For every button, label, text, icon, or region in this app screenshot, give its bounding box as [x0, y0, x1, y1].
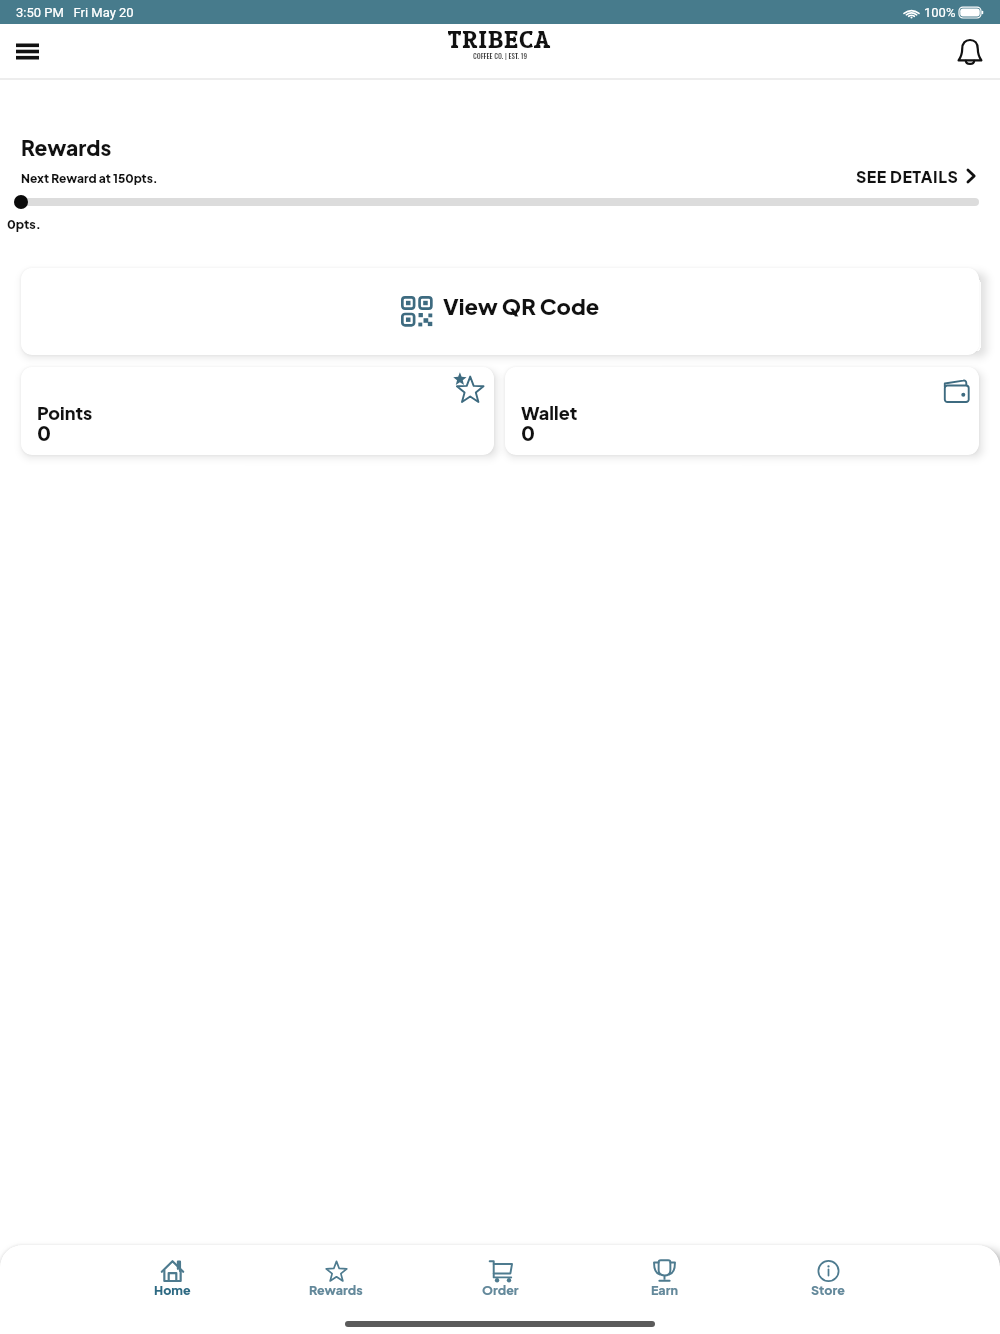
staticText: Home [154, 1282, 191, 1298]
staticText: Wallet [521, 401, 578, 424]
staticText: View QR Code [443, 292, 600, 320]
staticText: Earn [651, 1282, 678, 1298]
button[interactable]: View QR Code [21, 268, 979, 355]
staticText: 0 [37, 420, 51, 445]
staticText: SEE DETAILS [856, 166, 959, 186]
button[interactable]: Rewards [254, 1245, 418, 1304]
staticText: 0pts. [7, 216, 41, 232]
staticText: 100% [924, 5, 956, 20]
button[interactable]: Earn [582, 1245, 746, 1304]
staticText: Points [37, 401, 93, 424]
button[interactable]: Open menu [5, 29, 50, 74]
staticText: Next Reward at 150pts. [21, 171, 158, 186]
staticText: COFFEE CO. | EST. 19 [473, 51, 528, 61]
button[interactable]: SEE DETAILS [856, 166, 978, 186]
staticText: Rewards [309, 1282, 363, 1298]
button[interactable]: Order [418, 1245, 582, 1304]
staticText: Store [811, 1282, 845, 1298]
button[interactable]: Notifications [950, 31, 990, 71]
button[interactable]: Home [90, 1245, 254, 1304]
button[interactable]: Points [21, 367, 494, 455]
staticText: Order [482, 1282, 519, 1298]
staticText: Rewards [21, 134, 112, 160]
button[interactable]: Wallet [505, 367, 979, 455]
staticText: 3:50 PM Fri May 20 [16, 5, 134, 20]
button[interactable]: Store [746, 1245, 910, 1304]
staticText: TRIBECA [448, 23, 552, 56]
staticText: 0 [521, 420, 535, 445]
